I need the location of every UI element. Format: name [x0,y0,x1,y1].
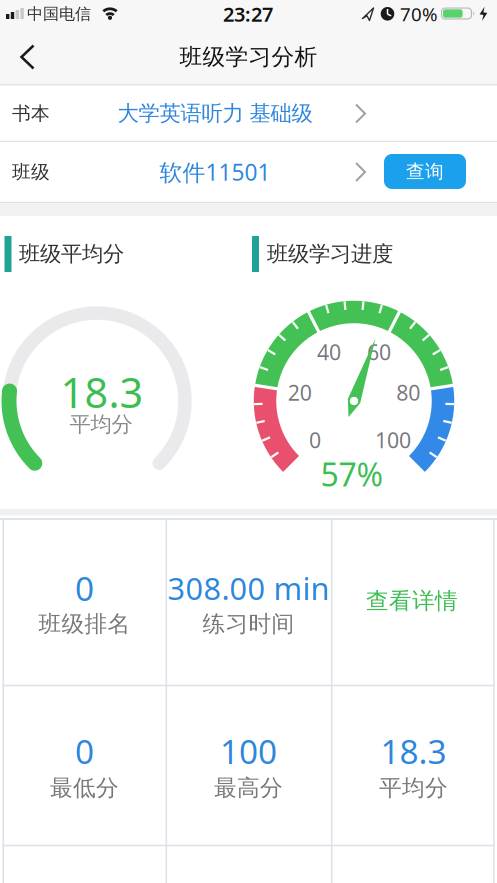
staticText: 中国电信 [27,4,91,24]
staticText: 最低分 [50,774,119,802]
button[interactable]: 查看详情 [332,519,492,683]
staticText: 23:27 [223,1,273,27]
staticText: 57% [320,453,383,495]
staticText: 0 [75,566,94,610]
staticText: 班级学习进度 [267,241,393,267]
staticText: 100 [375,426,411,454]
staticText: 查看详情 [366,587,458,615]
button[interactable]: 班级 [0,142,497,202]
staticText: 平均分 [379,774,448,802]
button[interactable]: 书本 [0,85,497,141]
staticText: 练习时间 [202,610,294,638]
staticText: 0 [309,426,321,454]
staticText: 班级平均分 [19,241,124,267]
staticText: 班级排名 [38,610,130,638]
staticText: 0 [75,729,94,773]
staticText: 308.00 min [167,568,329,608]
staticText: 40 [317,338,341,366]
button[interactable]: 返回 [10,35,54,78]
button[interactable]: 查询 [384,154,466,189]
staticText: 查询 [406,160,444,183]
staticText: 18.3 [60,365,143,419]
staticText: 80 [396,378,420,406]
staticText: 18.3 [380,729,446,773]
staticText: 班级学习分析 [179,43,317,71]
staticText: 100 [220,729,277,773]
staticText: 平均分 [69,411,132,438]
staticText: 20 [288,378,312,406]
staticText: 60 [367,338,391,366]
staticText: 软件11501 [159,157,270,187]
staticText: 70% [400,2,438,26]
staticText: 大学英语听力 基础级 [117,100,312,127]
staticText: 班级 [12,160,50,183]
staticText: 书本 [12,102,50,125]
staticText: 最高分 [214,774,283,802]
